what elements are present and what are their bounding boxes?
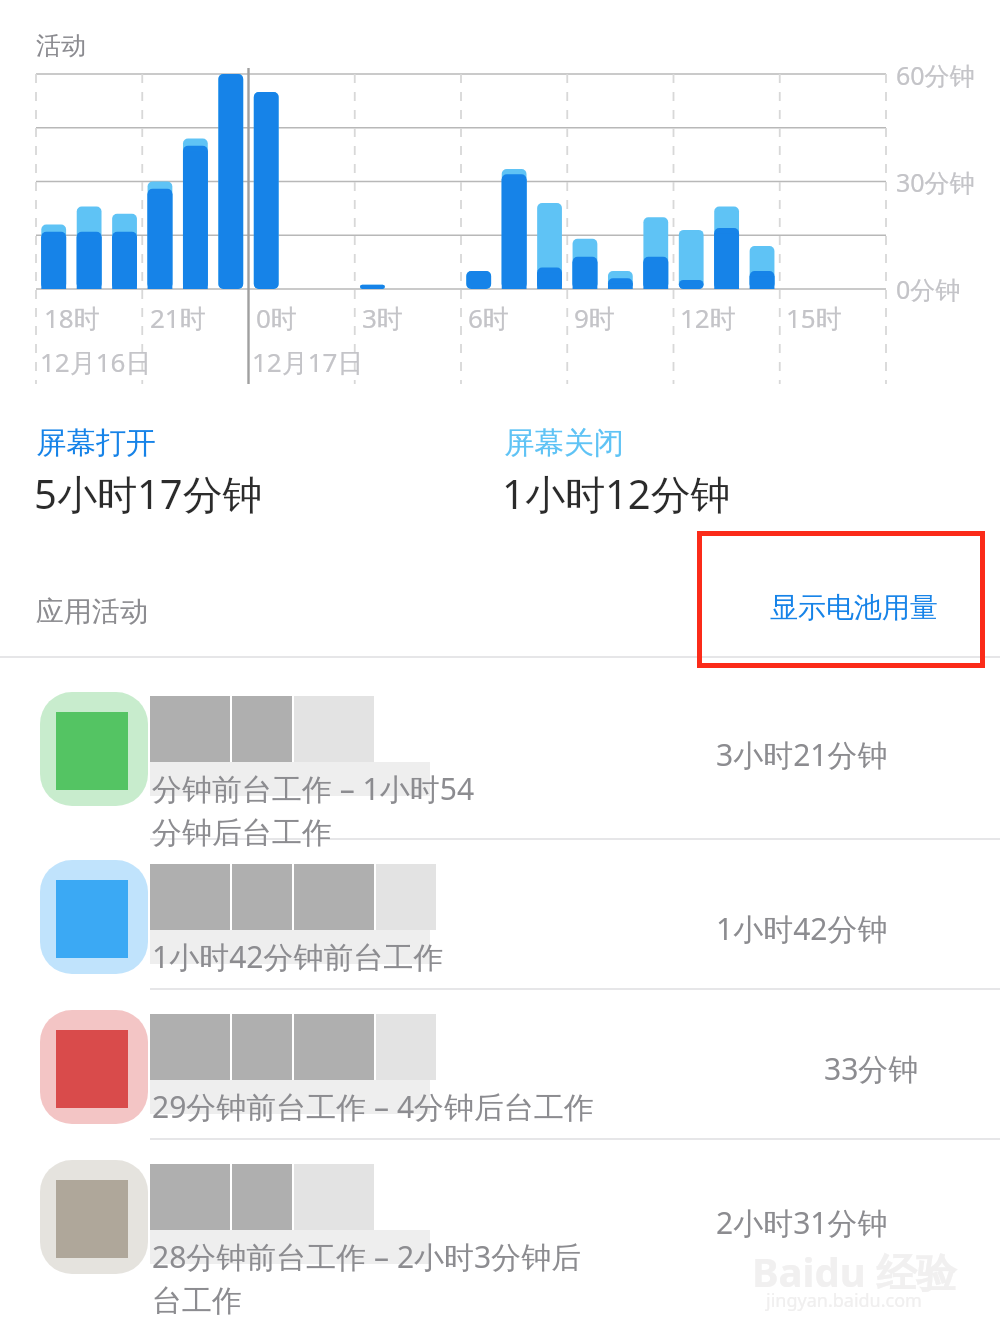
staticText: 3小时21分钟 (716, 734, 888, 775)
staticText: 29分钟前台工作 – 4分钟后台工作 (152, 1086, 595, 1127)
staticText: 30分钟 (896, 165, 975, 199)
staticText: 0时 (256, 300, 297, 336)
staticText: 应用活动 (36, 594, 148, 629)
staticText: 分钟前台工作 – 1小时54 (152, 768, 475, 809)
staticText: 12月17日 (252, 344, 364, 380)
staticText: 1小时42分钟前台工作 (152, 936, 444, 977)
staticText: Baidu 经验 (752, 1244, 957, 1299)
staticText: 2小时31分钟 (716, 1202, 888, 1243)
staticText: 12月16日 (40, 344, 152, 380)
staticText: 9时 (574, 300, 615, 336)
staticText: 显示电池用量 (770, 590, 938, 625)
button[interactable]: 29分钟前台工作 – 4分钟后台工作 (0, 1006, 1000, 1154)
button[interactable]: 28分钟前台工作 – 2小时3分钟后 (0, 1156, 1000, 1304)
staticText: 1小时12分钟 (502, 466, 731, 521)
staticText: 33分钟 (824, 1048, 919, 1089)
staticText: 3时 (362, 300, 403, 336)
staticText: 屏幕关闭 (504, 424, 624, 462)
staticText: 0分钟 (896, 272, 961, 306)
staticText: 6时 (468, 300, 509, 336)
staticText: jingyan.baidu.com (766, 1288, 922, 1313)
button[interactable]: 分钟前台工作 – 1小时54 (0, 688, 1000, 836)
button[interactable]: 1小时42分钟前台工作 (0, 856, 1000, 1004)
staticText: 18时 (44, 300, 100, 336)
staticText: 台工作 (152, 1282, 242, 1320)
staticText: 屏幕打开 (36, 424, 156, 462)
button[interactable]: 显示电池用量 (740, 586, 974, 632)
staticText: 分钟后台工作 (152, 814, 332, 852)
staticText: 60分钟 (896, 58, 975, 92)
staticText: 21时 (150, 300, 206, 336)
staticText: 12时 (680, 300, 736, 336)
staticText: 活动 (36, 30, 86, 61)
staticText: 28分钟前台工作 – 2小时3分钟后 (152, 1236, 582, 1277)
staticText: 1小时42分钟 (716, 908, 888, 949)
staticText: 5小时17分钟 (34, 466, 263, 521)
staticText: 15时 (786, 300, 842, 336)
